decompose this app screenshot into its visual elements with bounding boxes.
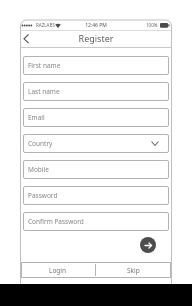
staticText: Login: [49, 266, 67, 275]
staticText: First name: [28, 61, 61, 70]
button[interactable]: First name: [23, 56, 169, 75]
staticText: Password: [28, 191, 58, 200]
staticText: Confirm Password: [28, 217, 84, 226]
staticText: RAZLABS: [36, 22, 55, 28]
button[interactable]: [140, 237, 156, 253]
staticText: Skip: [127, 266, 140, 275]
button[interactable]: Skip: [96, 262, 171, 278]
staticText: Email: [28, 113, 45, 122]
staticText: Register: [0, 32, 192, 44]
staticText: Country: [28, 139, 53, 148]
staticText: 12:46 PM: [0, 22, 192, 29]
button[interactable]: Mobile: [23, 160, 169, 179]
staticText: Mobile: [28, 165, 49, 174]
button[interactable]: Email: [23, 108, 169, 127]
staticText: Last name: [28, 87, 60, 96]
button[interactable]: Country: [23, 134, 169, 153]
button[interactable]: Login: [21, 262, 95, 278]
button[interactable]: Confirm Password: [23, 212, 169, 231]
button[interactable]: [21, 33, 33, 45]
staticText: 100%: [146, 22, 158, 28]
button[interactable]: Password: [23, 186, 169, 205]
button[interactable]: Last name: [23, 82, 169, 101]
